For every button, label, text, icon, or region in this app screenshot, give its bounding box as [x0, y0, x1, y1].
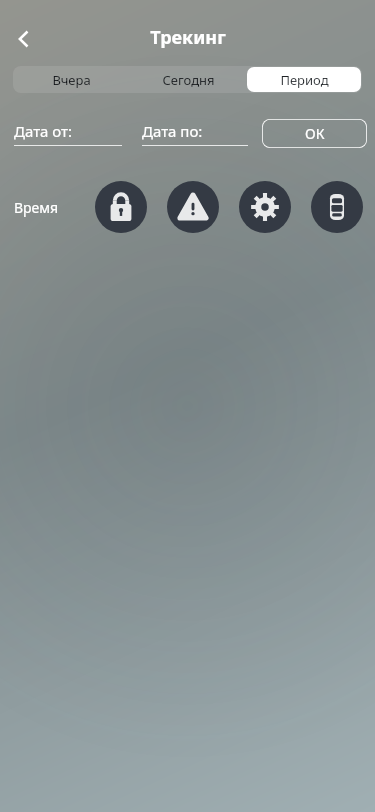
button[interactable]: Warning — [167, 181, 219, 233]
button[interactable]: Дата от: — [8, 121, 128, 146]
button[interactable]: Vehicle — [311, 181, 363, 233]
button[interactable]: Settings — [239, 181, 291, 233]
button[interactable]: Период — [247, 67, 361, 92]
button[interactable]: Back — [2, 17, 46, 61]
button[interactable]: Lock — [95, 181, 147, 233]
staticText: Сегодня — [162, 71, 215, 89]
staticText: Дата от: — [14, 121, 73, 141]
staticText: Время — [14, 198, 59, 217]
staticText: ОК — [305, 124, 325, 143]
button[interactable]: ОК — [262, 119, 367, 148]
staticText: Дата по: — [142, 121, 203, 141]
button[interactable]: Сегодня — [131, 67, 245, 92]
staticText: Трекинг — [150, 25, 226, 50]
button[interactable]: Вчера — [14, 67, 129, 92]
staticText: Период — [280, 71, 329, 89]
button[interactable]: Дата по: — [136, 121, 254, 146]
staticText: Вчера — [52, 71, 91, 89]
